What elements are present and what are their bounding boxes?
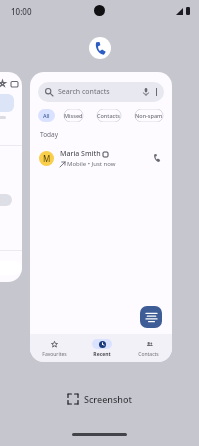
staticText: Contacts	[97, 112, 121, 119]
staticText: Non-spam	[135, 112, 163, 119]
staticText: Screenshot	[84, 393, 132, 405]
button[interactable]: Previous app	[0, 72, 22, 282]
staticText: 10:00	[11, 6, 32, 17]
button[interactable]: Phone app	[89, 37, 111, 59]
button[interactable]: Missed	[59, 109, 88, 122]
staticText: Contacts	[138, 351, 159, 358]
button[interactable]: Contacts	[125, 334, 172, 362]
staticText: Missed	[64, 112, 83, 119]
staticText: Mobile • Just now	[67, 160, 116, 168]
staticText: Maria Smith	[60, 149, 101, 159]
button[interactable]: Call Maria Smith	[151, 152, 163, 164]
button[interactable]: Search contacts	[38, 82, 164, 102]
staticText: Search contacts	[58, 87, 110, 97]
button[interactable]: Favourites	[30, 334, 78, 362]
staticText: Recent	[93, 351, 111, 358]
staticText: M	[43, 153, 51, 164]
button[interactable]: Screenshot	[58, 388, 142, 410]
staticText: Today	[40, 130, 59, 139]
button[interactable]: Non-spam	[130, 109, 168, 122]
staticText: Favourites	[42, 351, 67, 358]
button[interactable]: Recent	[78, 334, 125, 362]
staticText: All	[43, 112, 50, 119]
button[interactable]: M	[30, 145, 172, 171]
button[interactable]: Contacts	[92, 109, 126, 122]
button[interactable]: Dialpad	[140, 306, 162, 328]
button[interactable]: All	[38, 109, 55, 122]
